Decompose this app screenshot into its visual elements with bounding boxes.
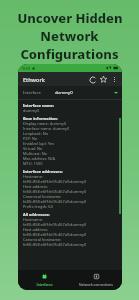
staticText: dummy0 bbox=[55, 90, 73, 96]
staticText: Canonical hostname: bbox=[23, 194, 62, 199]
button[interactable]: Refresh bbox=[87, 74, 98, 85]
staticText: Network bbox=[40, 27, 99, 45]
staticText: Network connections bbox=[79, 282, 113, 287]
staticText: Interface name: dummy0 bbox=[23, 126, 70, 131]
staticText: Prefix length: 64 bbox=[23, 204, 53, 209]
staticText: Uncover Hidden bbox=[17, 9, 123, 27]
staticText: Mac address: N/A bbox=[23, 156, 55, 161]
staticText: Hostname: bbox=[23, 217, 43, 222]
staticText: Interfaces bbox=[36, 282, 53, 287]
staticText: MTU: 1500 bbox=[23, 161, 43, 166]
staticText: Interface bbox=[23, 90, 41, 96]
button[interactable]: Interfaces bbox=[18, 270, 70, 290]
staticText: Host address: bbox=[23, 227, 48, 232]
button[interactable]: Interface bbox=[18, 86, 122, 99]
staticText: Virtual: No bbox=[23, 146, 43, 151]
staticText: Canonical hostname: bbox=[23, 237, 62, 242]
staticText: fe80::858:e6ff:fe05:467a%dummy0 bbox=[23, 242, 87, 247]
staticText: Loopback: No bbox=[23, 131, 49, 136]
staticText: P2P: No bbox=[23, 136, 38, 141]
staticText: Base information: bbox=[23, 116, 58, 121]
staticText: Interface addresses: bbox=[23, 169, 63, 174]
staticText: fe80::858:e6ff:fe05:467a%dummy0 bbox=[23, 222, 87, 227]
staticText: fe80::858:e6ff:fe05:467a%dummy0 bbox=[23, 189, 87, 194]
button[interactable]: Favorite bbox=[98, 74, 109, 85]
staticText: All addresses: bbox=[23, 212, 50, 217]
staticText: Multicast: No bbox=[23, 151, 48, 156]
staticText: Host address: bbox=[23, 184, 48, 189]
button[interactable]: Network connections bbox=[70, 270, 122, 290]
staticText: Configurations bbox=[20, 45, 119, 63]
staticText: fe80::858:e6ff:fe05:467a%dummy0 bbox=[23, 179, 87, 184]
staticText: Ethwork bbox=[23, 76, 45, 83]
staticText: Interface name: bbox=[23, 103, 55, 108]
staticText: dummy0 bbox=[23, 108, 40, 113]
staticText: fe80::858:e6ff:fe05:467a%dummy0 bbox=[23, 199, 87, 204]
staticText: fe80::858:e6ff:fe05:467a%dummy0 bbox=[23, 232, 87, 237]
staticText: Enabled (up): Yes bbox=[23, 141, 54, 146]
staticText: Display name: dummy0 bbox=[23, 121, 67, 126]
staticText: Hostname: bbox=[23, 174, 43, 179]
button[interactable]: More options bbox=[109, 74, 119, 84]
staticText: 18:50 bbox=[21, 66, 30, 71]
